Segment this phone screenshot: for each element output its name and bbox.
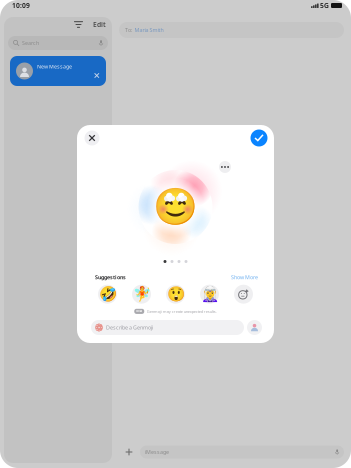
button[interactable]: Close [82,128,102,148]
staticText: 🧝‍♀️ [200,286,218,303]
button[interactable]: More options [218,160,232,174]
staticText: 🤣 [98,286,116,303]
staticText: iMessage [145,448,169,456]
staticText: 5G [320,1,329,10]
button[interactable]: Search [4,31,112,50]
button[interactable]: New Message [4,50,112,86]
button[interactable]: iMessage [136,445,344,458]
staticText: Describe a Genmoji [106,324,153,331]
button[interactable]: Add attachment [122,445,136,459]
button[interactable]: To: [112,22,351,38]
button[interactable]: Filter conversations [71,18,86,31]
staticText: BETA [136,310,142,313]
staticText: Suggestions [95,274,126,281]
staticText: New Message [37,63,72,70]
button[interactable]: Personalize [247,320,262,335]
staticText: Show More [231,274,258,281]
button[interactable]: 🧚 [132,285,151,304]
staticText: Genmoji may create unexpected results. [147,309,217,314]
staticText: Search [22,39,39,47]
staticText: 😊 [153,186,198,227]
staticText: 😲 [166,286,184,303]
button[interactable]: 🧝‍♀️ [200,285,219,304]
staticText: Maria Smith [134,26,163,34]
button[interactable]: Edit [86,18,108,31]
button[interactable]: 😲 [166,285,185,304]
button[interactable]: Use Genmoji [249,128,269,148]
staticText: To: [125,26,132,34]
button[interactable]: More emoji [234,285,253,304]
staticText: Edit [93,20,106,29]
staticText: 10:09 [12,1,30,10]
button[interactable]: Show More [231,274,258,281]
button[interactable]: 🤣 [98,285,117,304]
button[interactable]: Describe a Genmoji [91,320,244,335]
staticText: 🧚 [132,286,150,303]
